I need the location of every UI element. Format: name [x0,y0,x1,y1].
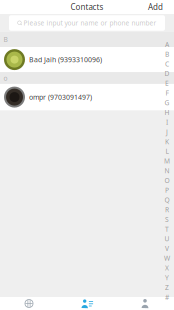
staticText: o [3,73,7,83]
staticText: K [165,137,169,146]
staticText: V [165,244,169,253]
button[interactable]: Add [145,0,166,14]
button[interactable]: Bad Jaih (9393310096) [0,47,174,72]
staticText: Contacts [70,2,103,12]
staticText: L [165,147,168,156]
staticText: Y [165,273,169,282]
staticText: Z [165,283,169,292]
staticText: J [166,127,168,136]
staticText: X [165,263,169,272]
staticText: Q [164,195,169,204]
staticText: I [166,118,168,127]
staticText: B [3,35,7,44]
button[interactable]: Contacts [58,297,116,310]
button[interactable]: Me [116,297,174,310]
staticText: G [164,98,169,107]
staticText: M [164,156,170,166]
staticText: P [165,186,169,195]
staticText: N [164,166,169,175]
staticText: Add [148,2,163,12]
staticText: A [165,40,169,49]
staticText: Please input your name or phone number [23,19,156,27]
staticText: E [165,79,169,88]
staticText: T [165,224,169,234]
staticText: W [164,254,170,263]
staticText: R [165,205,169,214]
staticText: H [164,108,169,117]
staticText: ompr (9703091497) [29,92,92,102]
staticText: C [165,59,169,68]
staticText: B [165,49,169,59]
staticText: Bad Jaih (9393310096) [29,55,102,64]
staticText: U [164,234,169,243]
button[interactable]: Discover [0,297,58,310]
staticText: # [165,292,169,302]
staticText: S [165,215,169,224]
button[interactable]: ompr (9703091497) [0,84,174,110]
staticText: D [164,69,169,78]
staticText: O [164,176,169,185]
staticText: F [165,88,168,97]
